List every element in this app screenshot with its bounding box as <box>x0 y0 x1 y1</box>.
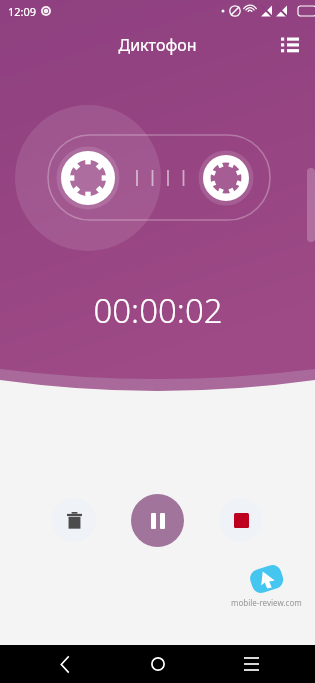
button[interactable]: Delete recording <box>52 498 96 542</box>
staticText: Диктофон <box>118 34 197 56</box>
button[interactable]: Pause recording <box>131 494 184 547</box>
staticText: 12:09 <box>8 4 37 19</box>
button[interactable]: Back <box>43 645 87 683</box>
button[interactable]: Recordings list <box>273 28 307 62</box>
staticText: mobile-review.com <box>231 597 302 608</box>
button[interactable]: Stop recording <box>219 498 263 542</box>
button[interactable]: Recent apps <box>229 645 273 683</box>
button[interactable]: Home <box>136 645 180 683</box>
staticText: 00:00:02 <box>93 288 223 333</box>
